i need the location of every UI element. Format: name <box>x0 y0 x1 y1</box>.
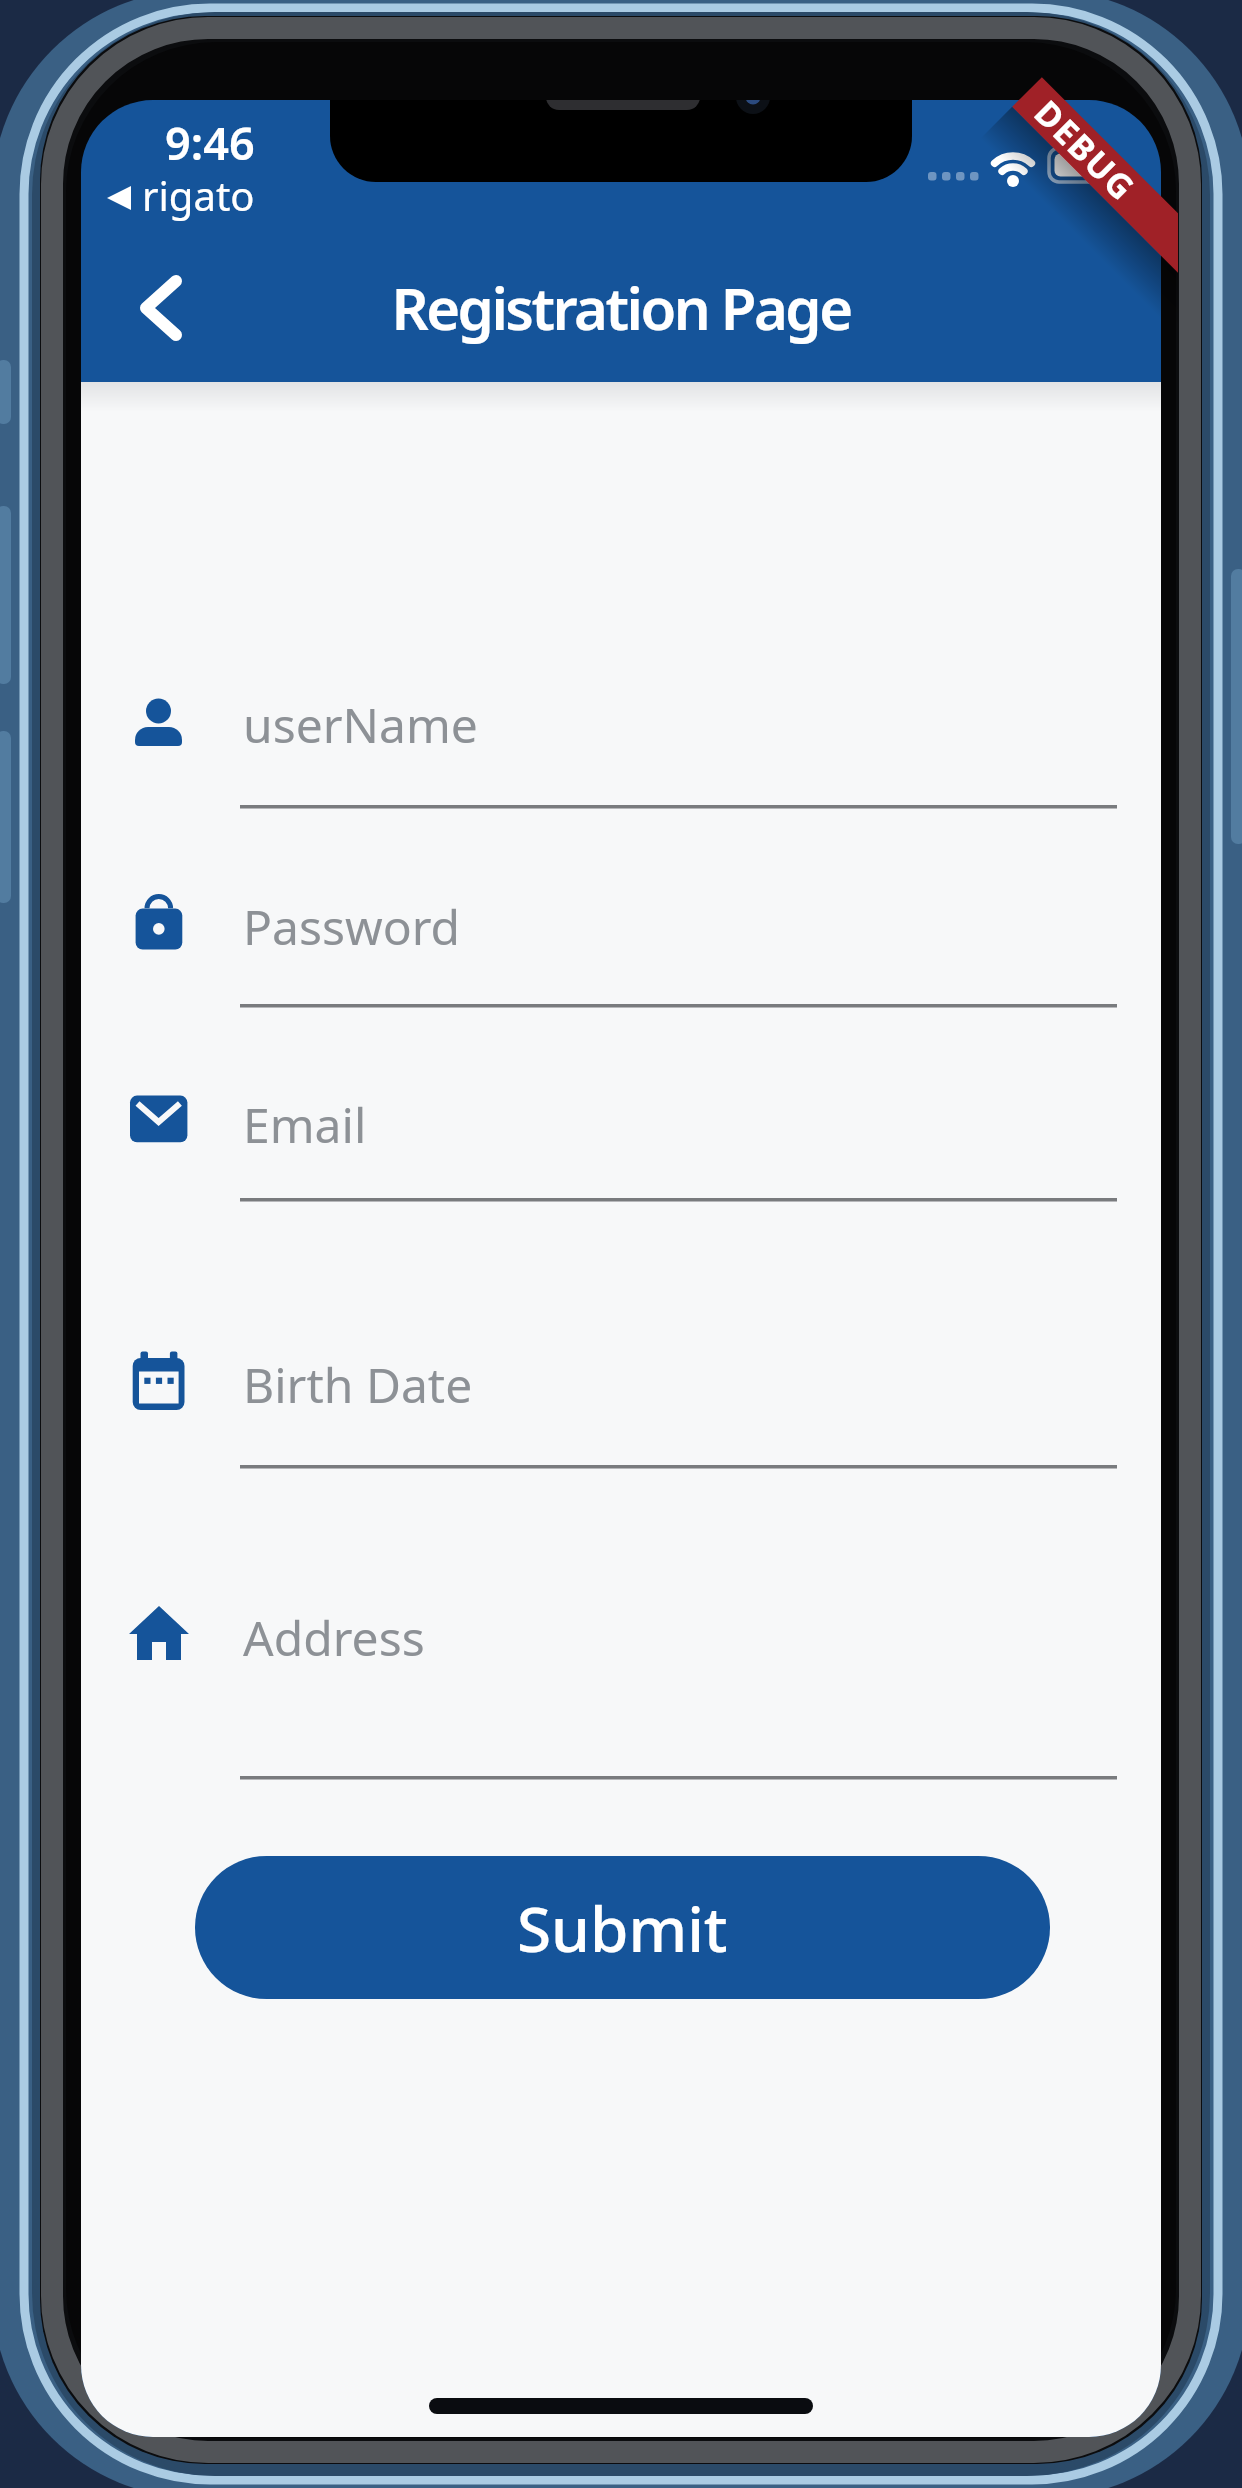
staticText: Email <box>243 1092 367 1157</box>
staticText: Address <box>243 1605 425 1670</box>
staticText: userName <box>243 692 478 757</box>
staticText: Registration Page <box>0 268 1242 347</box>
button[interactable] <box>130 1570 1120 1780</box>
button[interactable] <box>130 1318 1120 1468</box>
staticText: Submit <box>517 1886 728 1970</box>
staticText: Password <box>243 894 461 959</box>
button[interactable] <box>130 1056 1120 1202</box>
button[interactable] <box>130 658 1120 808</box>
staticText: DEBUG <box>1025 90 1146 211</box>
button[interactable]: Submit <box>195 1856 1050 1999</box>
button[interactable] <box>100 248 220 368</box>
button[interactable] <box>130 858 1120 1008</box>
staticText: 9:46 <box>165 112 255 173</box>
staticText: Birth Date <box>243 1352 473 1417</box>
staticText: rigato <box>142 168 255 222</box>
